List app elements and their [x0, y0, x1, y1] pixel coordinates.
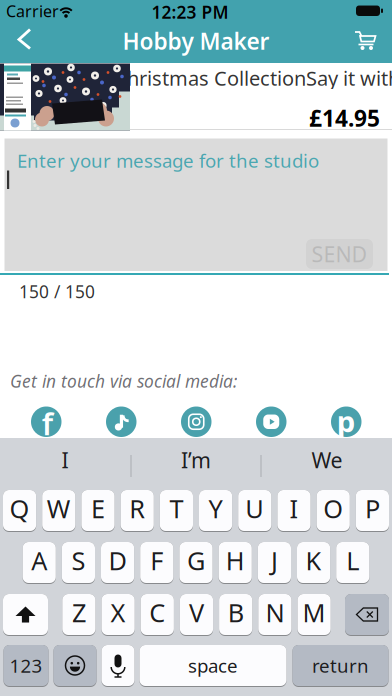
staticText: 123 — [9, 653, 42, 678]
staticText: W — [47, 492, 71, 525]
staticText: space — [188, 653, 238, 678]
button[interactable]: Pinterest — [331, 406, 361, 437]
staticText: O — [323, 492, 343, 525]
staticText: T — [169, 492, 183, 525]
staticText: E — [91, 492, 105, 525]
button[interactable]: X — [101, 594, 135, 636]
staticText: J — [271, 544, 278, 577]
staticText: U — [245, 492, 264, 525]
button[interactable]: H — [219, 542, 252, 584]
button[interactable]: We — [262, 443, 392, 477]
button[interactable]: space — [139, 645, 286, 687]
staticText: 12:23 PM — [151, 0, 228, 23]
button[interactable]: Back — [0, 24, 44, 62]
staticText: return — [312, 653, 369, 678]
staticText: X — [111, 596, 126, 629]
button[interactable]: Emoji — [53, 645, 96, 687]
staticText: K — [306, 544, 322, 577]
button[interactable]: F — [140, 542, 173, 584]
staticText: Y — [209, 492, 223, 525]
button[interactable]: K — [297, 542, 330, 584]
staticText: I — [289, 492, 298, 525]
button[interactable]: TikTok — [106, 406, 136, 437]
staticText: 150 / 150 — [19, 280, 95, 303]
staticText: D — [109, 544, 127, 577]
button[interactable]: E — [81, 490, 115, 532]
staticText: p — [337, 401, 356, 440]
staticText: L — [346, 544, 359, 577]
staticText: F — [150, 544, 163, 577]
staticText: Get in touch via social media: — [10, 369, 237, 392]
button[interactable]: Delete — [345, 594, 389, 636]
staticText: Enter your message for the studio — [17, 148, 319, 173]
staticText: Carrier — [6, 0, 59, 22]
button[interactable]: Y — [199, 490, 232, 532]
button[interactable]: O — [317, 490, 350, 532]
staticText: Hobby Maker — [122, 26, 269, 56]
button[interactable]: C — [141, 594, 174, 636]
staticText: I’m — [181, 446, 211, 474]
button[interactable]: M — [297, 594, 331, 636]
staticText: B — [228, 596, 244, 629]
button[interactable]: Instagram — [181, 406, 211, 437]
staticText: SEND — [311, 240, 367, 268]
button[interactable]: return — [292, 645, 388, 687]
button[interactable]: T — [160, 490, 193, 532]
button[interactable]: G — [179, 542, 213, 584]
button[interactable]: Shift — [3, 594, 48, 636]
button[interactable]: B — [219, 594, 252, 636]
button[interactable]: Dictate — [101, 645, 134, 687]
button[interactable]: N — [258, 594, 291, 636]
button[interactable]: Facebook — [31, 406, 61, 437]
button[interactable]: W — [42, 490, 75, 532]
staticText: R — [129, 492, 145, 525]
staticText: H — [226, 544, 245, 577]
button[interactable]: YouTube — [256, 406, 286, 437]
staticText: G — [187, 544, 205, 577]
button[interactable]: I’m — [131, 443, 261, 477]
staticText: Z — [72, 596, 86, 629]
button[interactable]: J — [258, 542, 291, 584]
button[interactable]: I — [277, 490, 311, 532]
button[interactable]: 123 — [3, 645, 48, 687]
staticText: M — [303, 596, 326, 629]
button[interactable]: A — [23, 542, 56, 584]
staticText: We — [311, 446, 342, 474]
staticText: f — [42, 403, 53, 444]
staticText: P — [365, 492, 380, 525]
staticText: I — [61, 446, 68, 474]
button[interactable]: SEND — [306, 239, 373, 269]
button[interactable]: U — [238, 490, 271, 532]
button[interactable]: P — [356, 490, 389, 532]
staticText: N — [265, 596, 284, 629]
button[interactable]: Q — [3, 490, 36, 532]
staticText: A — [31, 544, 47, 577]
staticText: S — [71, 544, 85, 577]
button[interactable]: hristmas CollectionSay it with Style and — [0, 63, 392, 131]
button[interactable]: Cart — [344, 24, 388, 62]
button[interactable]: D — [101, 542, 134, 584]
button[interactable]: Enter your message for the studio — [4, 138, 387, 271]
button[interactable]: I — [0, 443, 130, 477]
staticText: hristmas CollectionSay it with Style and — [127, 65, 392, 91]
button[interactable]: S — [62, 542, 95, 584]
button[interactable]: Z — [62, 594, 95, 636]
button[interactable]: V — [180, 594, 213, 636]
button[interactable]: L — [336, 542, 369, 584]
staticText: C — [149, 596, 165, 629]
staticText: £14.95 — [309, 103, 380, 133]
staticText: Q — [10, 492, 30, 525]
staticText: V — [189, 596, 204, 629]
button[interactable]: R — [121, 490, 154, 532]
